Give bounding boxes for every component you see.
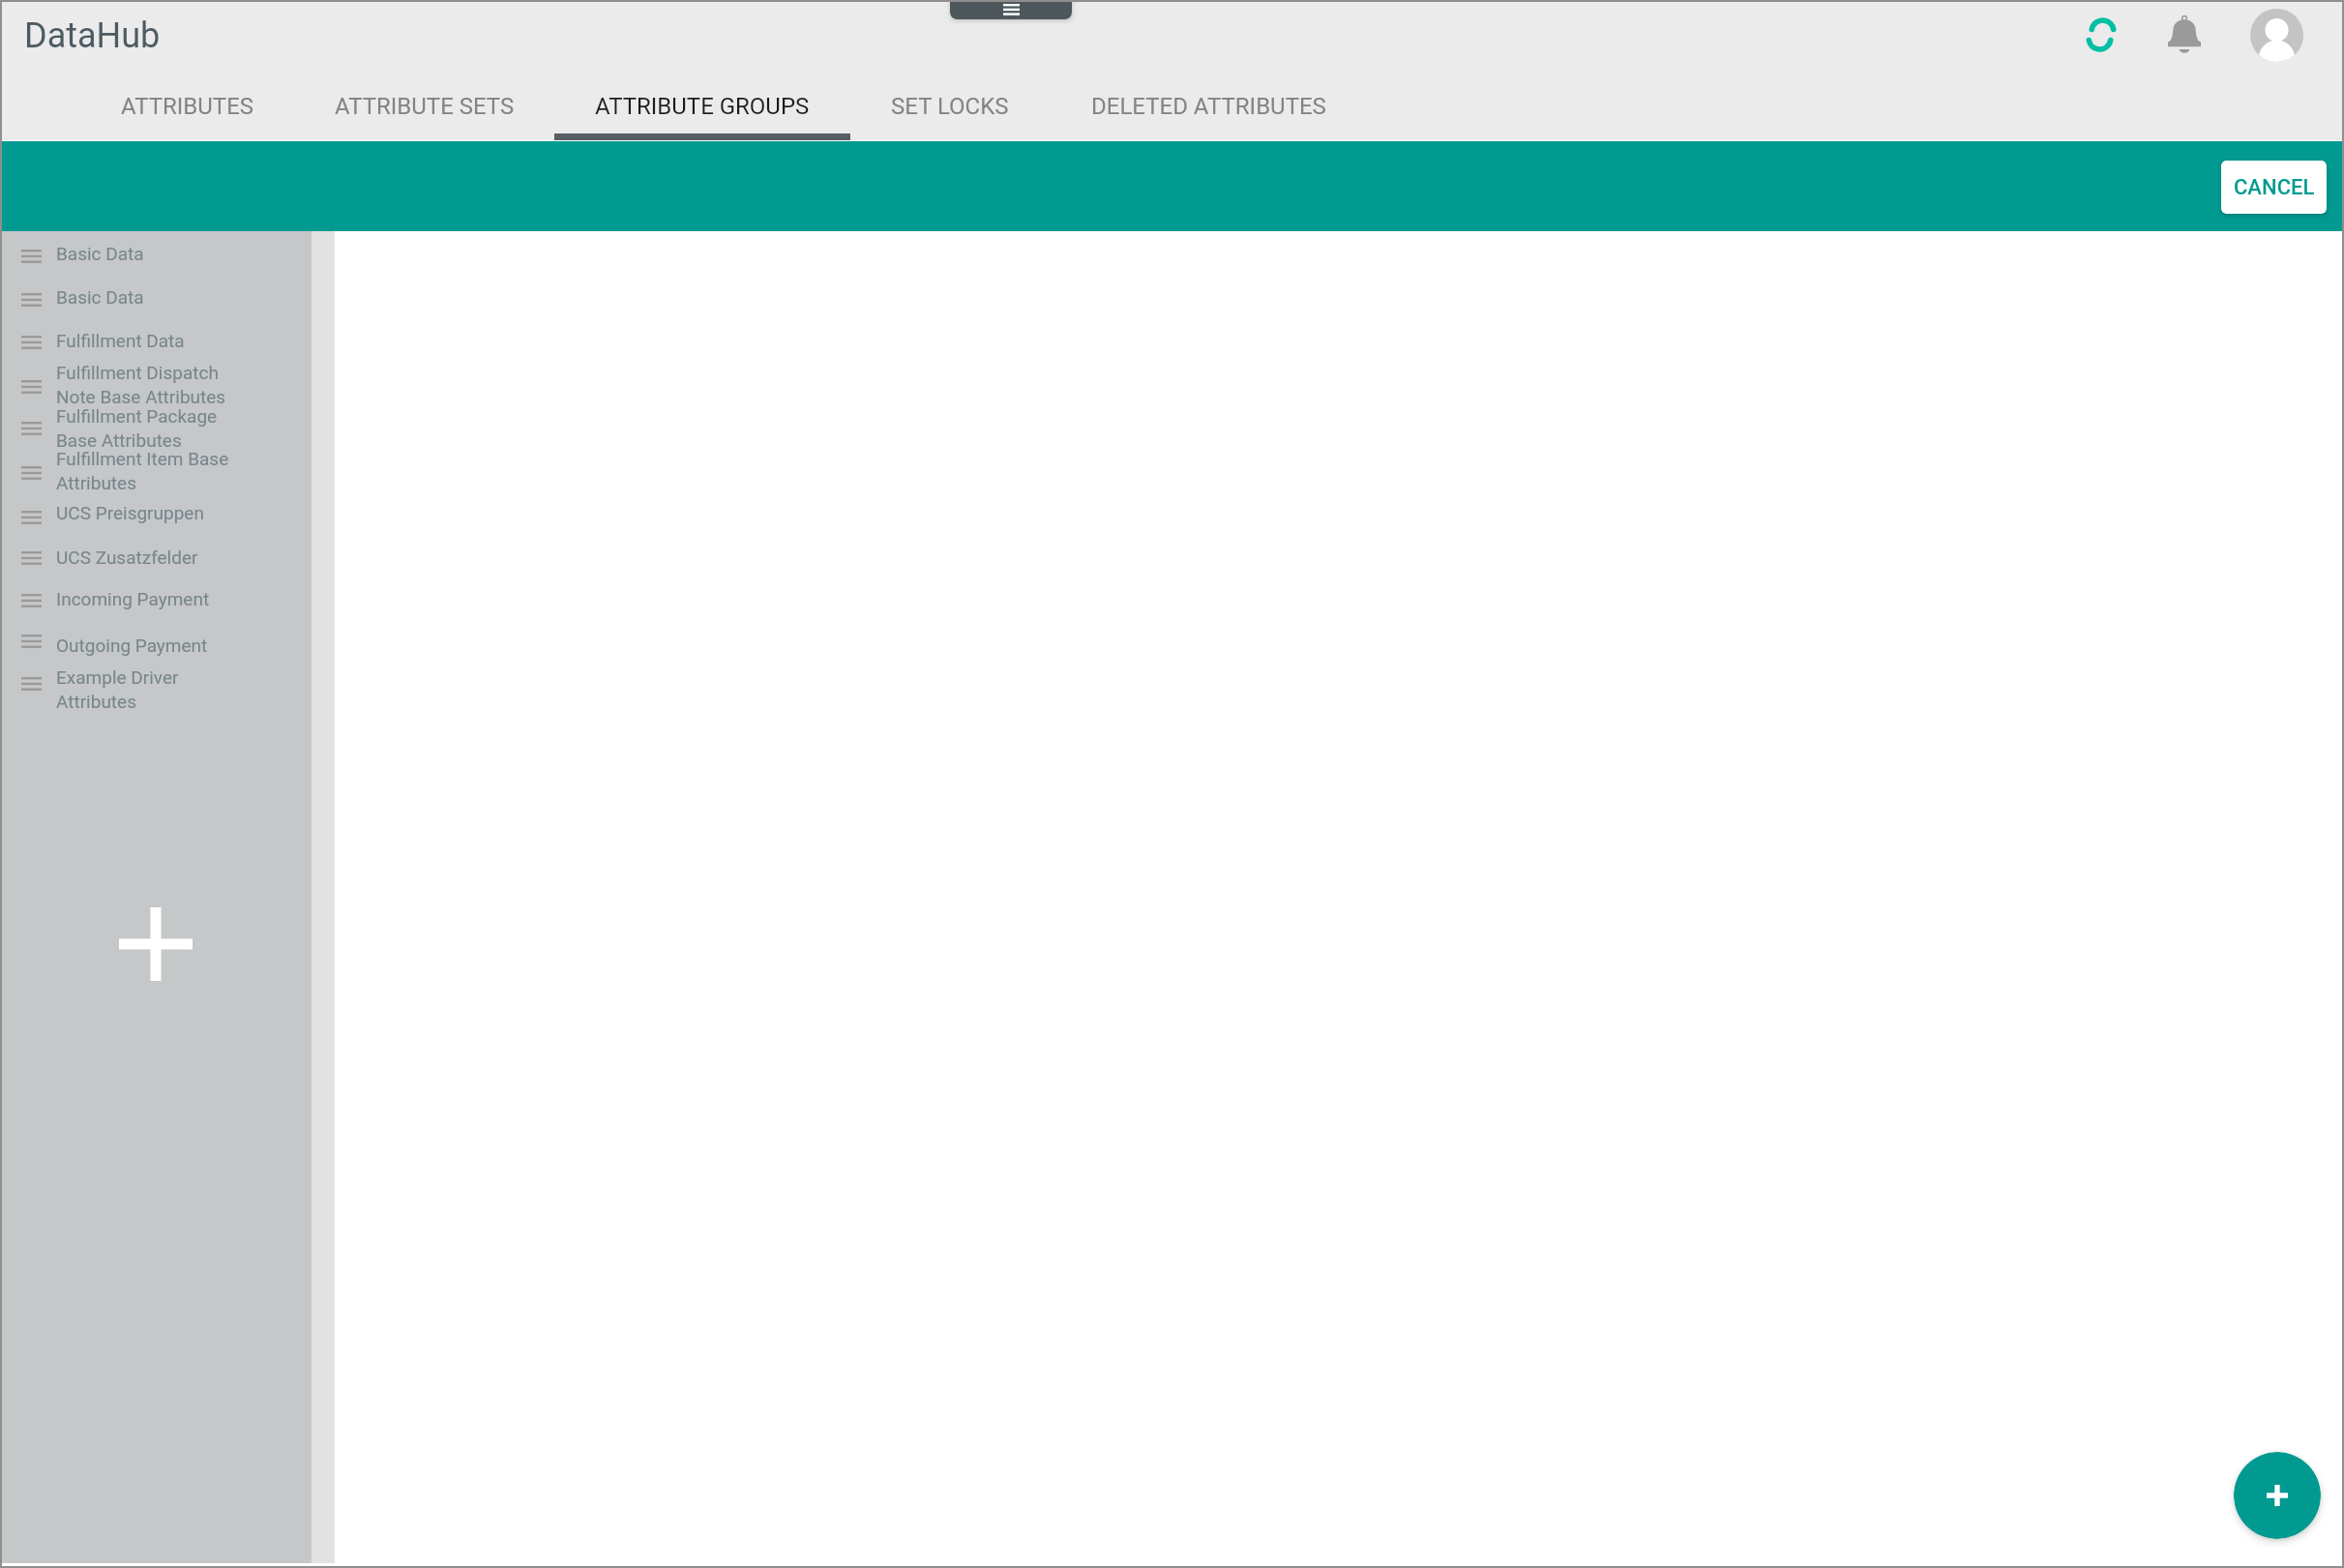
button[interactable]: UCS Zusatzfelder: [0, 537, 312, 578]
button[interactable]: Sync: [2074, 8, 2128, 62]
staticText: DataHub: [24, 15, 161, 56]
staticText: ATTRIBUTE SETS: [335, 93, 515, 120]
button[interactable]: Fulfillment Dispatch Note Base Attribute…: [0, 366, 312, 407]
staticText: Example Driver Attributes: [56, 666, 310, 708]
button[interactable]: ATTRIBUTE SETS: [293, 58, 554, 140]
button[interactable]: Incoming Payment: [0, 579, 312, 621]
button[interactable]: Fulfillment Package Base Attributes: [0, 407, 312, 449]
staticText: Fulfillment Item Base Attributes: [56, 448, 310, 489]
staticText: Fulfillment Data: [56, 330, 310, 351]
staticText: ATTRIBUTES: [121, 93, 254, 120]
button[interactable]: Notifications: [2157, 8, 2211, 62]
button[interactable]: Fulfillment Data: [0, 321, 312, 363]
button[interactable]: Basic Data: [0, 235, 312, 277]
button[interactable]: Add: [2234, 1452, 2321, 1539]
button[interactable]: Outgoing Payment: [0, 620, 312, 662]
staticText: DELETED ATTRIBUTES: [1091, 93, 1326, 120]
staticText: UCS Zusatzfelder: [56, 547, 310, 568]
button[interactable]: ATTRIBUTES: [80, 58, 294, 140]
staticText: CANCEL: [2234, 175, 2315, 200]
staticText: Basic Data: [56, 243, 310, 264]
staticText: SET LOCKS: [891, 93, 1009, 120]
button[interactable]: SET LOCKS: [850, 58, 1050, 140]
staticText: ATTRIBUTE GROUPS: [595, 93, 810, 120]
button[interactable]: Fulfillment Item Base Attributes: [0, 452, 312, 493]
button[interactable]: Account: [2249, 8, 2303, 62]
staticText: Fulfillment Dispatch Note Base Attribute…: [56, 362, 310, 403]
staticText: Incoming Payment: [56, 588, 310, 609]
button[interactable]: CANCEL: [2221, 161, 2327, 214]
button[interactable]: Basic Data: [0, 279, 312, 320]
button[interactable]: Menu: [950, 0, 1072, 19]
staticText: Basic Data: [56, 286, 310, 308]
staticText: Fulfillment Package Base Attributes: [56, 405, 310, 447]
button[interactable]: Add group: [83, 872, 228, 1017]
button[interactable]: DELETED ATTRIBUTES: [1050, 58, 1366, 140]
button[interactable]: Example Driver Attributes: [0, 663, 312, 704]
button[interactable]: UCS Preisgruppen: [0, 496, 312, 538]
staticText: Outgoing Payment: [56, 635, 310, 656]
staticText: UCS Preisgruppen: [56, 502, 310, 523]
button[interactable]: ATTRIBUTE GROUPS: [554, 58, 850, 140]
